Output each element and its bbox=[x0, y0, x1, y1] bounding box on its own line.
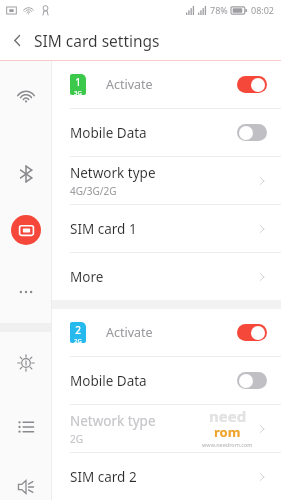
staticText: 08:02 bbox=[251, 4, 275, 16]
button[interactable]: More bbox=[52, 253, 281, 300]
staticText: 2G bbox=[70, 432, 83, 446]
button[interactable]: Toggle on bbox=[237, 324, 267, 341]
button[interactable]: SIM card settings bbox=[11, 215, 41, 245]
staticText: Activate bbox=[106, 324, 153, 341]
staticText: Network type bbox=[70, 412, 156, 430]
button[interactable]: Mobile Data bbox=[52, 357, 281, 404]
staticText: 4G/3G/2G bbox=[70, 184, 117, 198]
staticText: SIM card 2 bbox=[70, 468, 137, 486]
button[interactable]: Display bbox=[9, 346, 43, 380]
button[interactable]: More options bbox=[9, 275, 43, 309]
staticText: Mobile Data bbox=[70, 124, 147, 142]
staticText: rom bbox=[214, 423, 241, 441]
button[interactable]: 1 bbox=[52, 61, 281, 108]
staticText: Activate bbox=[106, 76, 153, 93]
button[interactable]: Toggle off bbox=[237, 124, 267, 141]
staticText: 78% bbox=[210, 4, 228, 16]
staticText: need bbox=[209, 406, 247, 426]
button[interactable]: 2 bbox=[52, 309, 281, 356]
staticText: SIM card settings bbox=[34, 30, 160, 51]
button[interactable]: Notifications bbox=[9, 410, 43, 444]
button[interactable]: Back bbox=[0, 23, 34, 57]
staticText: 2 bbox=[75, 323, 81, 337]
button[interactable]: SIM card 2 bbox=[52, 453, 281, 500]
staticText: Network type bbox=[70, 164, 156, 182]
staticText: Mobile Data bbox=[70, 372, 147, 390]
button[interactable]: Mobile Data bbox=[52, 109, 281, 156]
staticText: SIM card 1 bbox=[70, 220, 137, 238]
button[interactable]: Toggle off bbox=[237, 372, 267, 389]
staticText: More bbox=[70, 268, 104, 286]
staticText: www.needrom.com bbox=[202, 441, 253, 448]
staticText: 2G bbox=[74, 337, 82, 343]
button[interactable]: Bluetooth bbox=[9, 157, 43, 191]
button[interactable]: Wi-Fi bbox=[9, 79, 43, 113]
button[interactable]: Network type bbox=[52, 405, 281, 452]
button[interactable]: Network type bbox=[52, 157, 281, 204]
button[interactable]: SIM card 1 bbox=[52, 205, 281, 252]
staticText: 1 bbox=[75, 75, 81, 89]
button[interactable]: Toggle on bbox=[237, 76, 267, 93]
staticText: 3G bbox=[74, 89, 82, 95]
button[interactable]: Sound bbox=[9, 474, 43, 500]
